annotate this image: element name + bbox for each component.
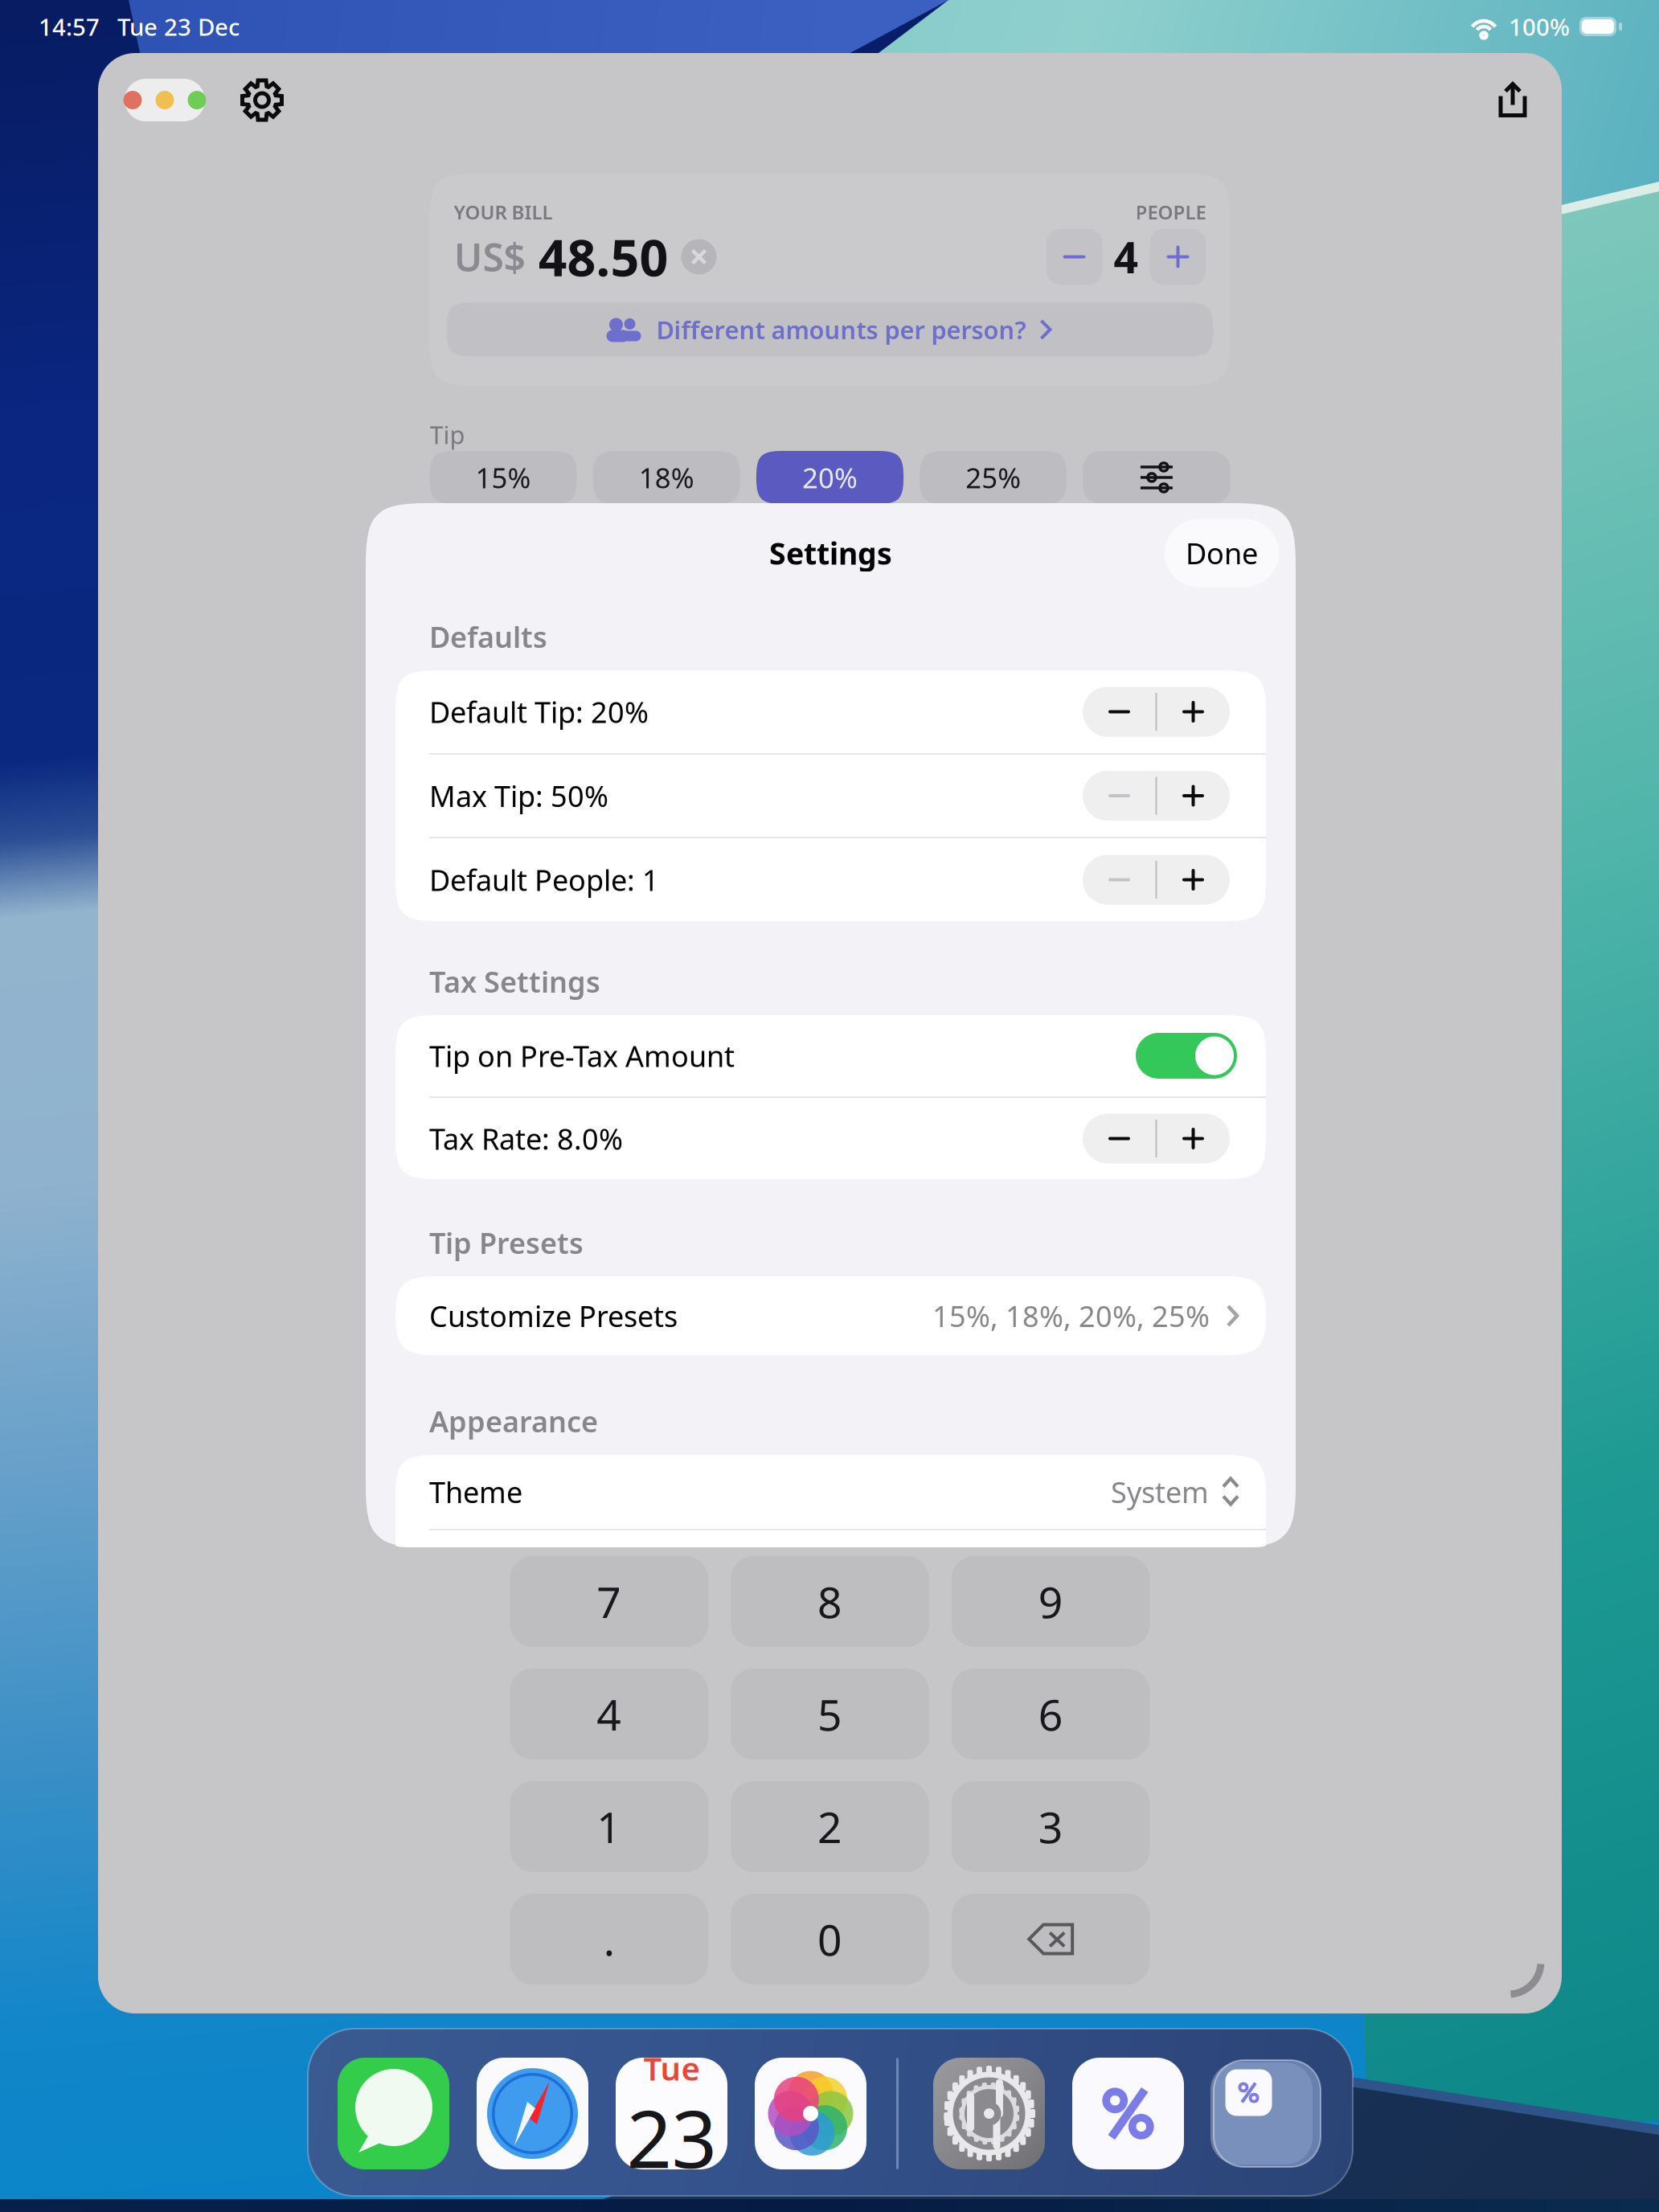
staticText: 4 bbox=[597, 1686, 622, 1743]
button[interactable]: Theme bbox=[395, 1455, 1266, 1529]
button[interactable]: 4 bbox=[510, 1669, 708, 1759]
staticText: 3 bbox=[1038, 1798, 1063, 1855]
button[interactable]: 5 bbox=[731, 1669, 929, 1759]
button[interactable]: Safari bbox=[477, 2058, 588, 2169]
button[interactable]: Max Tip: 50% bbox=[395, 755, 1266, 837]
staticText: US$ bbox=[454, 231, 525, 282]
staticText: 15%, 18%, 20%, 25% bbox=[932, 1297, 1210, 1335]
button[interactable]: Window controls bbox=[125, 79, 205, 121]
button[interactable]: Tip Calculator recent bbox=[1211, 2058, 1323, 2169]
staticText: 1 bbox=[597, 1798, 622, 1855]
staticText: Default Tip: 20% bbox=[429, 693, 649, 731]
staticText: 23 bbox=[627, 2085, 717, 2190]
button[interactable]: 9 bbox=[952, 1556, 1150, 1647]
button[interactable]: 15% bbox=[430, 451, 577, 504]
staticText: 18% bbox=[639, 459, 694, 496]
button[interactable]: Tip on Pre-Tax Amount bbox=[395, 1015, 1266, 1096]
button[interactable]: 20% bbox=[756, 451, 904, 504]
staticText: 20% bbox=[802, 459, 858, 496]
staticText: Tip on Pre-Tax Amount bbox=[429, 1037, 735, 1075]
staticText: 100% bbox=[1509, 11, 1570, 42]
staticText: PEOPLE bbox=[1135, 199, 1206, 225]
staticText: 25% bbox=[965, 459, 1021, 496]
staticText: 7 bbox=[597, 1573, 622, 1630]
button[interactable]: 7 bbox=[510, 1556, 708, 1647]
button[interactable]: Calendar bbox=[616, 2058, 727, 2169]
button[interactable]: Increase bbox=[1157, 1114, 1229, 1163]
staticText: 2 bbox=[817, 1798, 842, 1855]
button[interactable]: Done bbox=[1165, 519, 1279, 587]
button[interactable]: 2 bbox=[731, 1781, 929, 1872]
staticText: . bbox=[603, 1911, 615, 1968]
button[interactable]: Default People: 1 bbox=[395, 838, 1266, 921]
staticText: 6 bbox=[1038, 1686, 1063, 1743]
button[interactable]: Increase bbox=[1157, 687, 1229, 737]
staticText: 0 bbox=[817, 1911, 842, 1968]
button[interactable]: Photos bbox=[755, 2058, 866, 2169]
staticText: 48.50 bbox=[538, 223, 668, 290]
staticText: 14:57 bbox=[39, 11, 100, 42]
button[interactable]: 3 bbox=[952, 1781, 1150, 1872]
button[interactable]: Tax Rate: 8.0% bbox=[395, 1098, 1266, 1179]
button[interactable]: 18% bbox=[593, 451, 740, 504]
button[interactable]: Settings bbox=[241, 79, 283, 121]
staticText: Customize Presets bbox=[429, 1297, 678, 1335]
button[interactable]: Decrease bbox=[1083, 1114, 1155, 1163]
staticText: Done bbox=[1186, 534, 1258, 572]
button[interactable]: Customize Presets bbox=[395, 1276, 1266, 1355]
button[interactable]: Settings bbox=[933, 2058, 1045, 2169]
button[interactable]: 6 bbox=[952, 1669, 1150, 1759]
button[interactable]: Default Tip: 20% bbox=[395, 670, 1266, 753]
button[interactable]: Increase bbox=[1157, 771, 1229, 821]
button[interactable]: Tip Calculator bbox=[1072, 2058, 1184, 2169]
button[interactable]: Increase bbox=[1157, 855, 1229, 905]
button[interactable]: Decrease bbox=[1083, 771, 1155, 821]
button[interactable]: Tip on Pre-Tax Amount bbox=[1136, 1033, 1237, 1079]
staticText: 15% bbox=[476, 459, 531, 496]
staticText: Tip bbox=[430, 418, 465, 451]
staticText: 9 bbox=[1038, 1573, 1063, 1630]
staticText: System bbox=[1111, 1473, 1209, 1511]
button[interactable]: Decrease bbox=[1083, 855, 1155, 905]
staticText: Defaults bbox=[429, 617, 547, 656]
button[interactable]: Share bbox=[1495, 80, 1530, 120]
button[interactable]: 8 bbox=[731, 1556, 929, 1647]
staticText: Tax Settings bbox=[429, 962, 600, 1001]
button[interactable] bbox=[952, 1894, 1150, 1985]
button[interactable]: 1 bbox=[510, 1781, 708, 1872]
staticText: 5 bbox=[817, 1686, 842, 1743]
button[interactable]: 25% bbox=[920, 451, 1067, 504]
button[interactable]: Custom tip bbox=[1083, 451, 1230, 504]
staticText: Different amounts per person? bbox=[656, 313, 1026, 346]
staticText: Appearance bbox=[429, 1402, 598, 1440]
staticText: 4 bbox=[1114, 228, 1139, 285]
button[interactable]: Messages bbox=[338, 2058, 449, 2169]
staticText: Max Tip: 50% bbox=[429, 777, 608, 815]
button[interactable]: Decrease bbox=[1083, 687, 1155, 737]
staticText: 8 bbox=[817, 1573, 842, 1630]
button[interactable]: 0 bbox=[731, 1894, 929, 1985]
staticText: Settings bbox=[769, 533, 892, 573]
staticText: Tip Presets bbox=[429, 1224, 584, 1262]
staticText: Tue bbox=[643, 2047, 700, 2089]
staticText: Default People: 1 bbox=[429, 861, 659, 899]
staticText: Theme bbox=[429, 1473, 522, 1511]
staticText: Tax Rate: 8.0% bbox=[429, 1119, 623, 1158]
staticText: YOUR BILL bbox=[454, 199, 553, 225]
staticText: Tue 23 Dec bbox=[117, 11, 240, 42]
button[interactable]: . bbox=[510, 1894, 708, 1985]
